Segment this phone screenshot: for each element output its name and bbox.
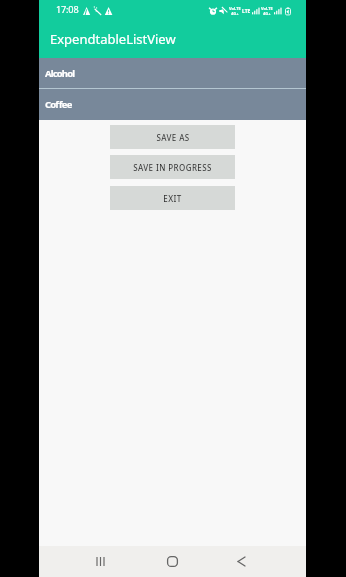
staticText: EXIT [163, 193, 182, 204]
staticText: VoLTE [229, 6, 241, 11]
staticText: Alcohol [45, 67, 75, 80]
staticText: SAVE IN PROGRESS [133, 162, 212, 173]
button[interactable]: SAVE IN PROGRESS [110, 155, 235, 179]
staticText: SAVE AS [156, 132, 190, 143]
button[interactable]: Recent apps [87, 548, 113, 574]
button[interactable]: Alcohol [39, 58, 306, 88]
button[interactable]: Coffee [39, 89, 306, 120]
button[interactable]: SAVE AS [110, 125, 235, 149]
staticText: Coffee [45, 98, 72, 111]
staticText: ExpendtableListView [50, 30, 176, 48]
staticText: VoLTE [261, 6, 273, 11]
button[interactable]: Home [159, 548, 185, 574]
button[interactable]: Back [228, 548, 254, 574]
staticText: 17:08 [56, 3, 79, 16]
button[interactable]: EXIT [110, 186, 235, 210]
staticText: 4G+ [231, 11, 239, 16]
staticText: LTE [242, 8, 251, 15]
staticText: 4G+ [263, 11, 271, 16]
